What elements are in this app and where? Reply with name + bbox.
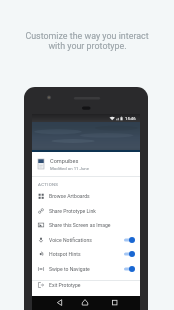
staticText: Browse Artboards: [49, 193, 90, 199]
button[interactable]: Hotspot Hints: [32, 246, 140, 261]
staticText: Swipe to Navigate: [49, 266, 124, 272]
button[interactable]: Browse Artboards: [32, 188, 140, 203]
staticText: Customize the way you interact: [25, 31, 149, 41]
staticText: Exit Prototype: [49, 282, 81, 288]
button[interactable]: Share this Screen as Image: [32, 217, 140, 232]
button[interactable]: Voice Notifications: [32, 232, 140, 247]
staticText: Share this Screen as Image: [49, 222, 111, 228]
staticText: with your prototype.: [48, 41, 127, 51]
button[interactable]: Compuibes: [32, 152, 140, 176]
button[interactable]: Swipe to Navigate: [32, 261, 140, 276]
staticText: Hotspot Hints: [49, 251, 124, 257]
button[interactable]: Share Prototype Link: [32, 203, 140, 218]
staticText: Share Prototype Link: [49, 208, 96, 214]
button[interactable]: Exit Prototype: [32, 277, 140, 292]
staticText: Compuibes: [50, 158, 79, 165]
staticText: Voice Notifications: [49, 237, 124, 243]
staticText: 15:46: [125, 116, 136, 121]
staticText: ACTIONS: [38, 182, 59, 187]
staticText: Modified on 11 June: [50, 166, 89, 171]
